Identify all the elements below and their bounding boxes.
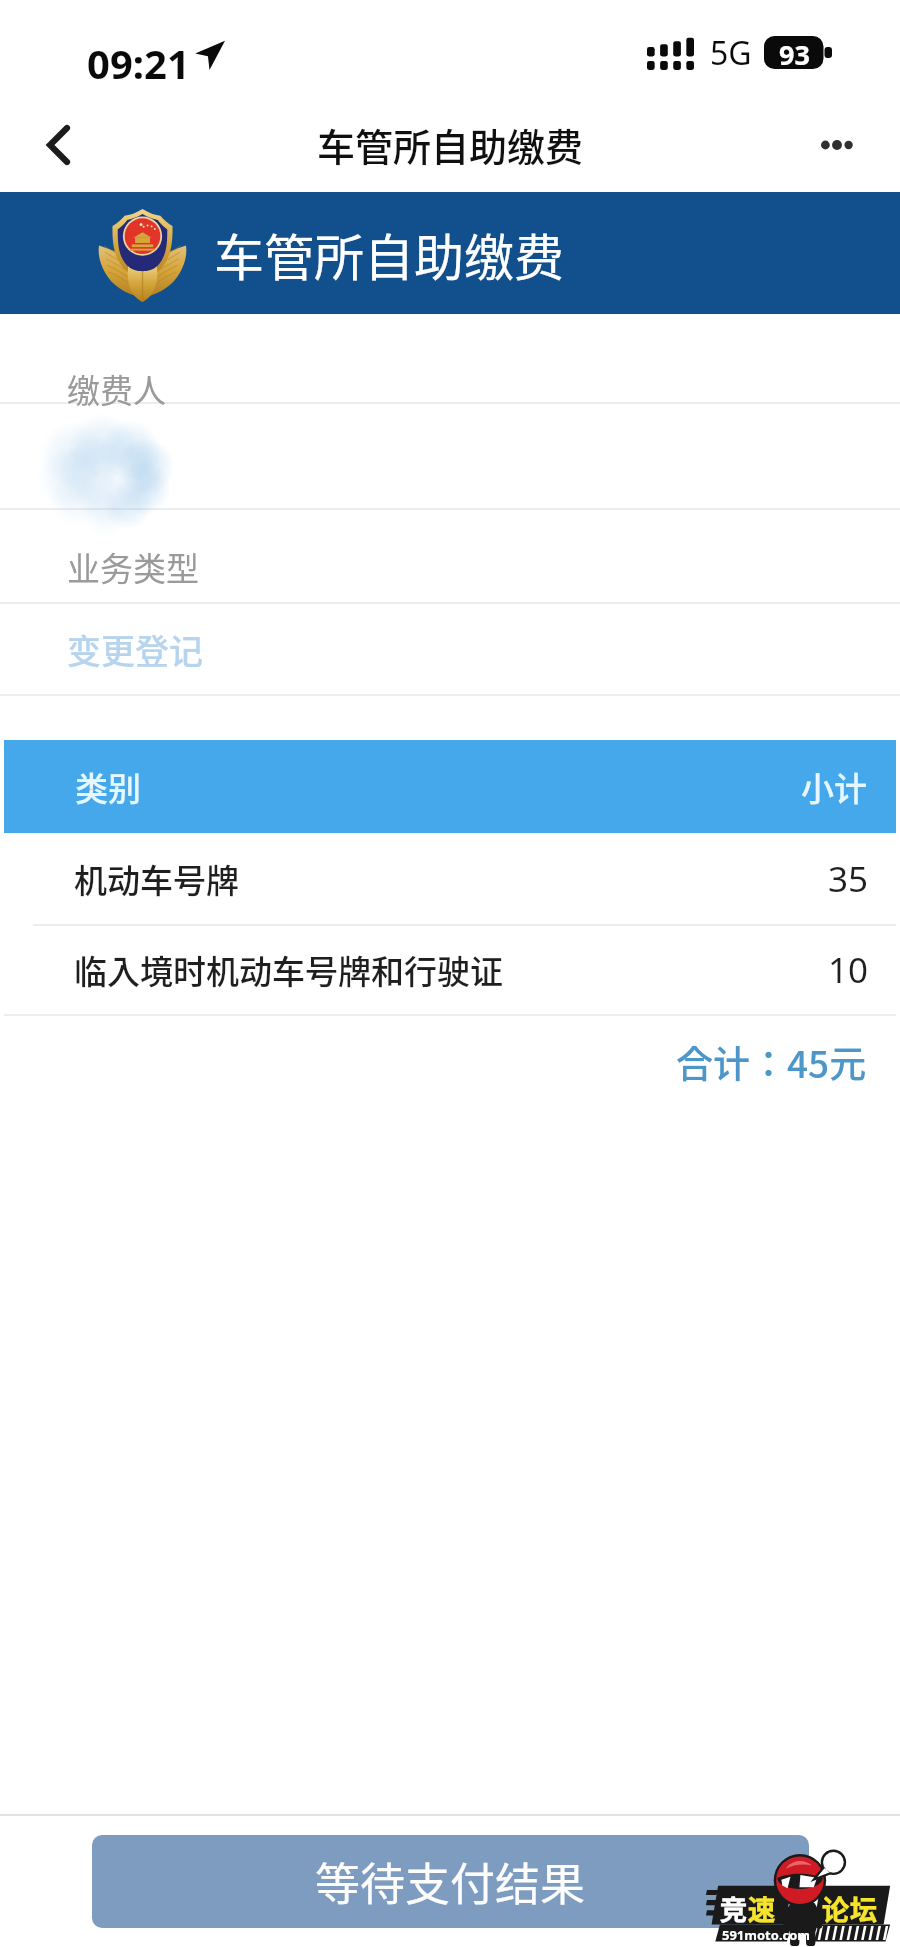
staticText: 业务类型 — [67, 543, 199, 591]
staticText: 09:21 — [87, 36, 190, 90]
staticText: 坛 — [850, 1889, 877, 1928]
staticText: 35 — [828, 855, 869, 903]
staticText: 93 — [779, 36, 810, 69]
button[interactable]: Back — [0, 98, 112, 192]
staticText: 小计 — [801, 763, 867, 811]
staticText: 10 — [828, 946, 869, 994]
staticText: 类别 — [75, 763, 141, 811]
staticText: 速 — [748, 1889, 775, 1928]
staticText: 竞 — [720, 1889, 747, 1928]
staticText: 论 — [822, 1889, 849, 1928]
staticText: 车管所自助缴费 — [214, 218, 564, 290]
staticText: 5G — [710, 31, 752, 75]
staticText: 机动车号牌 — [74, 855, 239, 903]
staticText: 合计：45元 — [676, 1035, 867, 1089]
staticText: 缴费人 — [67, 365, 166, 413]
staticText: 等待支付结果 — [315, 1849, 586, 1914]
staticText: 变更登记 — [67, 625, 203, 674]
button[interactable]: 等待支付结果 — [92, 1835, 809, 1928]
staticText: 车管所自助缴费 — [317, 117, 584, 172]
staticText: 临入境时机动车号牌和行驶证 — [74, 946, 503, 994]
button[interactable]: 机动车号牌 — [4, 833, 896, 924]
staticText: 591moto.com — [722, 1926, 811, 1944]
button[interactable]: More options — [790, 98, 900, 192]
button[interactable]: 临入境时机动车号牌和行驶证 — [4, 926, 896, 1014]
